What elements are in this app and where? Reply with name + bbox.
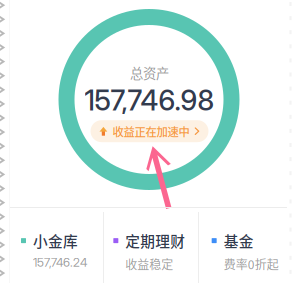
staticText: 小金库 bbox=[33, 230, 78, 251]
staticText: 收益正在加速中 bbox=[112, 123, 189, 139]
button[interactable]: 收益正在加速中 bbox=[90, 120, 208, 142]
button[interactable]: 定期理财 bbox=[98, 207, 197, 283]
staticText: 总资产 bbox=[130, 63, 169, 82]
staticText: 收益稳定 bbox=[125, 255, 173, 273]
staticText: 157,746.98 bbox=[84, 83, 214, 117]
button[interactable]: 基金 bbox=[197, 207, 295, 283]
button[interactable]: 小金库 bbox=[0, 207, 98, 283]
staticText: 定期理财 bbox=[125, 230, 185, 251]
staticText: 费率0折起 bbox=[224, 255, 279, 273]
staticText: 基金 bbox=[224, 230, 254, 251]
staticText: 157,746.24 bbox=[33, 255, 87, 270]
